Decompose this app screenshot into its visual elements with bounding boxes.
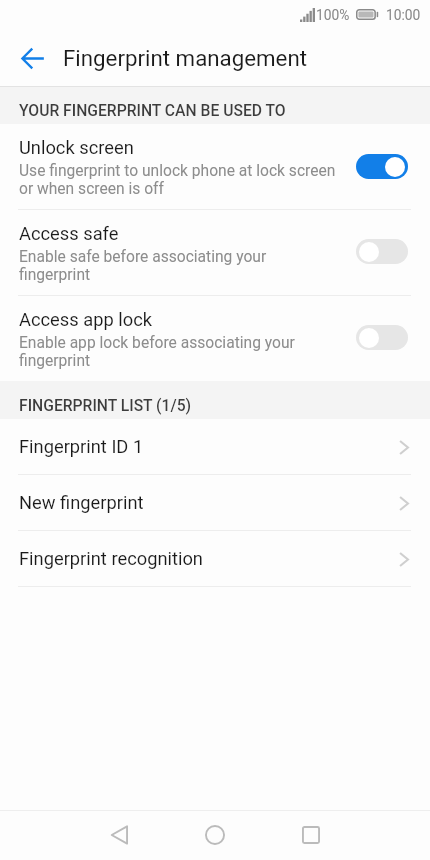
staticText: FINGERPRINT LIST (1/5) (19, 396, 192, 414)
other: Signal strength (300, 8, 315, 22)
staticText: New fingerprint (19, 492, 399, 513)
button[interactable]: Switch off (356, 239, 408, 264)
staticText: 100% (316, 7, 350, 23)
staticText: YOUR FINGERPRINT CAN BE USED TO (19, 101, 286, 119)
button[interactable]: Unlock screen (0, 124, 430, 209)
staticText: Fingerprint ID 1 (19, 436, 399, 457)
button[interactable]: Back (10, 35, 56, 81)
staticText: Unlock screen (19, 137, 134, 158)
button[interactable]: Access app lock (0, 295, 430, 381)
staticText: Fingerprint recognition (19, 548, 399, 569)
staticText: Use fingerprint to unlock phone at lock … (19, 162, 336, 198)
button[interactable]: Switch off (356, 325, 408, 350)
button[interactable]: Access safe (0, 209, 430, 295)
button[interactable]: New fingerprint (0, 474, 430, 530)
other: Battery full (356, 9, 379, 20)
staticText: Enable safe before associating your fing… (19, 248, 267, 284)
staticText: Access safe (19, 223, 119, 244)
button[interactable]: Fingerprint recognition (0, 530, 430, 586)
staticText: Access app lock (19, 309, 152, 330)
button[interactable]: Switch on (356, 154, 408, 179)
button[interactable]: Fingerprint ID 1 (0, 419, 430, 474)
staticText: Fingerprint management (63, 45, 308, 71)
button[interactable]: Home (179, 811, 251, 858)
button[interactable]: Recents (275, 811, 347, 858)
staticText: Enable app lock before associating your … (19, 334, 295, 370)
staticText: 10:00 (386, 7, 421, 23)
button[interactable]: Back (83, 811, 155, 858)
